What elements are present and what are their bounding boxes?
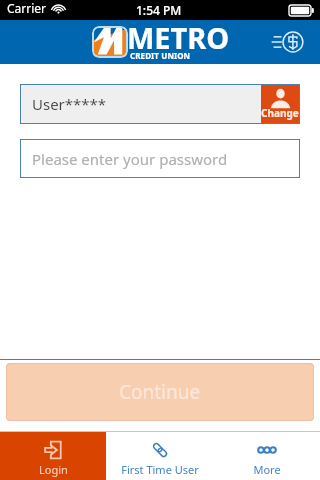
button[interactable]: Quick balance bbox=[266, 21, 308, 63]
staticText: Please enter your password bbox=[32, 149, 228, 169]
button[interactable]: Change user bbox=[261, 85, 299, 123]
button[interactable]: More bbox=[213, 431, 320, 480]
staticText: First Time User bbox=[121, 462, 199, 477]
staticText: CREDIT UNION bbox=[130, 50, 191, 61]
button[interactable]: User***** bbox=[20, 84, 300, 124]
staticText: Carrier bbox=[7, 0, 47, 16]
button[interactable]: Continue bbox=[6, 363, 314, 421]
staticText: User***** bbox=[32, 94, 107, 114]
staticText: Change bbox=[261, 106, 299, 120]
button[interactable]: Login bbox=[0, 431, 106, 480]
staticText: Continue bbox=[119, 379, 201, 405]
staticText: 1:54 PM bbox=[136, 2, 182, 18]
staticText: METRO bbox=[127, 18, 230, 57]
button[interactable]: First Time User bbox=[106, 431, 213, 480]
staticText: Login bbox=[39, 462, 68, 477]
staticText: More bbox=[253, 462, 281, 477]
button[interactable]: Please enter your password bbox=[20, 139, 300, 178]
